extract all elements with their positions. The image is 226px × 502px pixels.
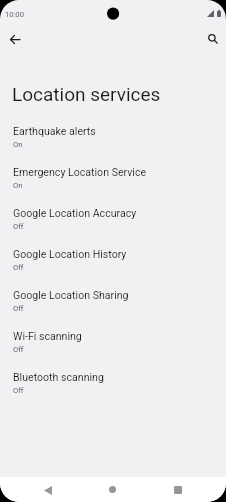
button[interactable]: Home [97, 477, 128, 502]
staticText: On [13, 140, 23, 149]
button[interactable]: Search [201, 27, 225, 51]
button[interactable]: Wi-Fi scanning [0, 323, 226, 364]
staticText: Google Location History [13, 248, 127, 260]
button[interactable]: Earthquake alerts [0, 118, 226, 159]
staticText: Bluetooth scanning [13, 371, 104, 383]
button[interactable]: Google Location Accuracy [0, 200, 226, 241]
staticText: Emergency Location Service [13, 166, 147, 178]
staticText: On [13, 181, 23, 190]
staticText: Off [13, 222, 24, 231]
staticText: Off [13, 386, 24, 395]
staticText: 10:00 [5, 10, 24, 19]
button[interactable]: Emergency Location Service [0, 159, 226, 200]
staticText: Wi-Fi scanning [13, 330, 82, 342]
button[interactable]: Bluetooth scanning [0, 364, 226, 405]
button[interactable]: Back [3, 27, 27, 51]
button[interactable]: Google Location History [0, 241, 226, 282]
staticText: Location services [12, 83, 161, 105]
staticText: Earthquake alerts [13, 125, 96, 137]
staticText: Off [13, 345, 24, 354]
button[interactable]: Back [32, 477, 63, 502]
button[interactable]: Recents [162, 477, 193, 502]
staticText: Google Location Sharing [13, 289, 129, 301]
staticText: Off [13, 304, 24, 313]
button[interactable]: Google Location Sharing [0, 282, 226, 323]
staticText: Off [13, 263, 24, 272]
staticText: Google Location Accuracy [13, 207, 137, 219]
